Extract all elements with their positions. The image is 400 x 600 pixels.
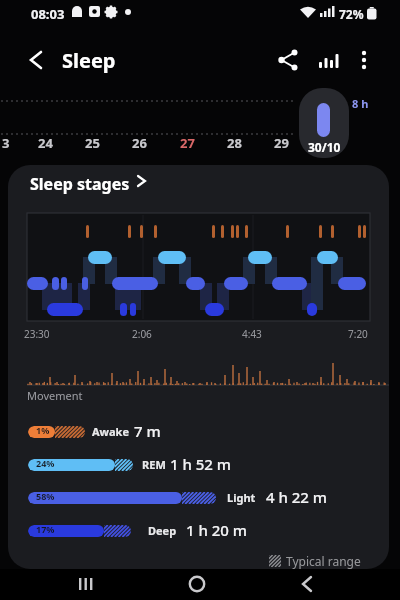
button[interactable] (28, 420, 368, 446)
staticText: Light (227, 490, 256, 505)
button[interactable] (22, 172, 162, 194)
staticText: 29 (274, 134, 289, 152)
staticText: 1 h 20 m (186, 520, 248, 540)
button[interactable] (70, 570, 100, 598)
staticText: 7:20 (348, 327, 368, 341)
staticText: 25 (85, 134, 100, 152)
staticText: 17% (36, 523, 55, 535)
button[interactable]: 3 (0, 131, 28, 157)
button[interactable]: 25 (79, 131, 111, 157)
staticText: 28 (227, 134, 242, 152)
staticText: 3 (2, 134, 10, 152)
staticText: 7 m (134, 421, 161, 441)
staticText: 1 h 52 m (170, 454, 232, 474)
staticText: 08:03 (31, 5, 65, 23)
staticText: Movement (27, 388, 83, 403)
button[interactable] (28, 519, 368, 545)
staticText: 24% (36, 457, 55, 469)
button[interactable]: 29 (268, 131, 300, 157)
button[interactable] (350, 46, 378, 74)
button[interactable] (292, 570, 322, 598)
button[interactable]: 28 (221, 131, 253, 157)
button[interactable]: 24 (32, 131, 64, 157)
button[interactable] (20, 45, 50, 75)
button[interactable] (28, 453, 368, 479)
staticText: 26 (132, 134, 147, 152)
staticText: REM (142, 457, 166, 472)
staticText: 8 h (352, 96, 369, 111)
staticText: 27 (180, 134, 195, 152)
staticText: 58% (36, 490, 55, 502)
staticText: 2:06 (132, 327, 152, 341)
staticText: Sleep stages (30, 173, 130, 195)
staticText: 72% (339, 6, 364, 22)
staticText: 24 (38, 134, 53, 152)
staticText: 4:43 (242, 327, 262, 341)
button[interactable]: 26 (126, 131, 158, 157)
button[interactable] (28, 486, 368, 512)
staticText: 23:30 (24, 327, 50, 341)
staticText: Awake (92, 424, 130, 439)
staticText: 4 h 22 m (266, 487, 328, 507)
staticText: Deep (148, 523, 177, 538)
button[interactable]: 30/10 (299, 88, 349, 158)
button[interactable] (274, 46, 302, 74)
button[interactable] (314, 46, 342, 74)
staticText: 30/10 (308, 139, 341, 155)
button[interactable] (182, 570, 212, 598)
staticText: 1% (36, 424, 50, 436)
button[interactable]: 27 (174, 131, 206, 157)
staticText: Typical range (286, 553, 361, 569)
staticText: Sleep (62, 47, 116, 74)
